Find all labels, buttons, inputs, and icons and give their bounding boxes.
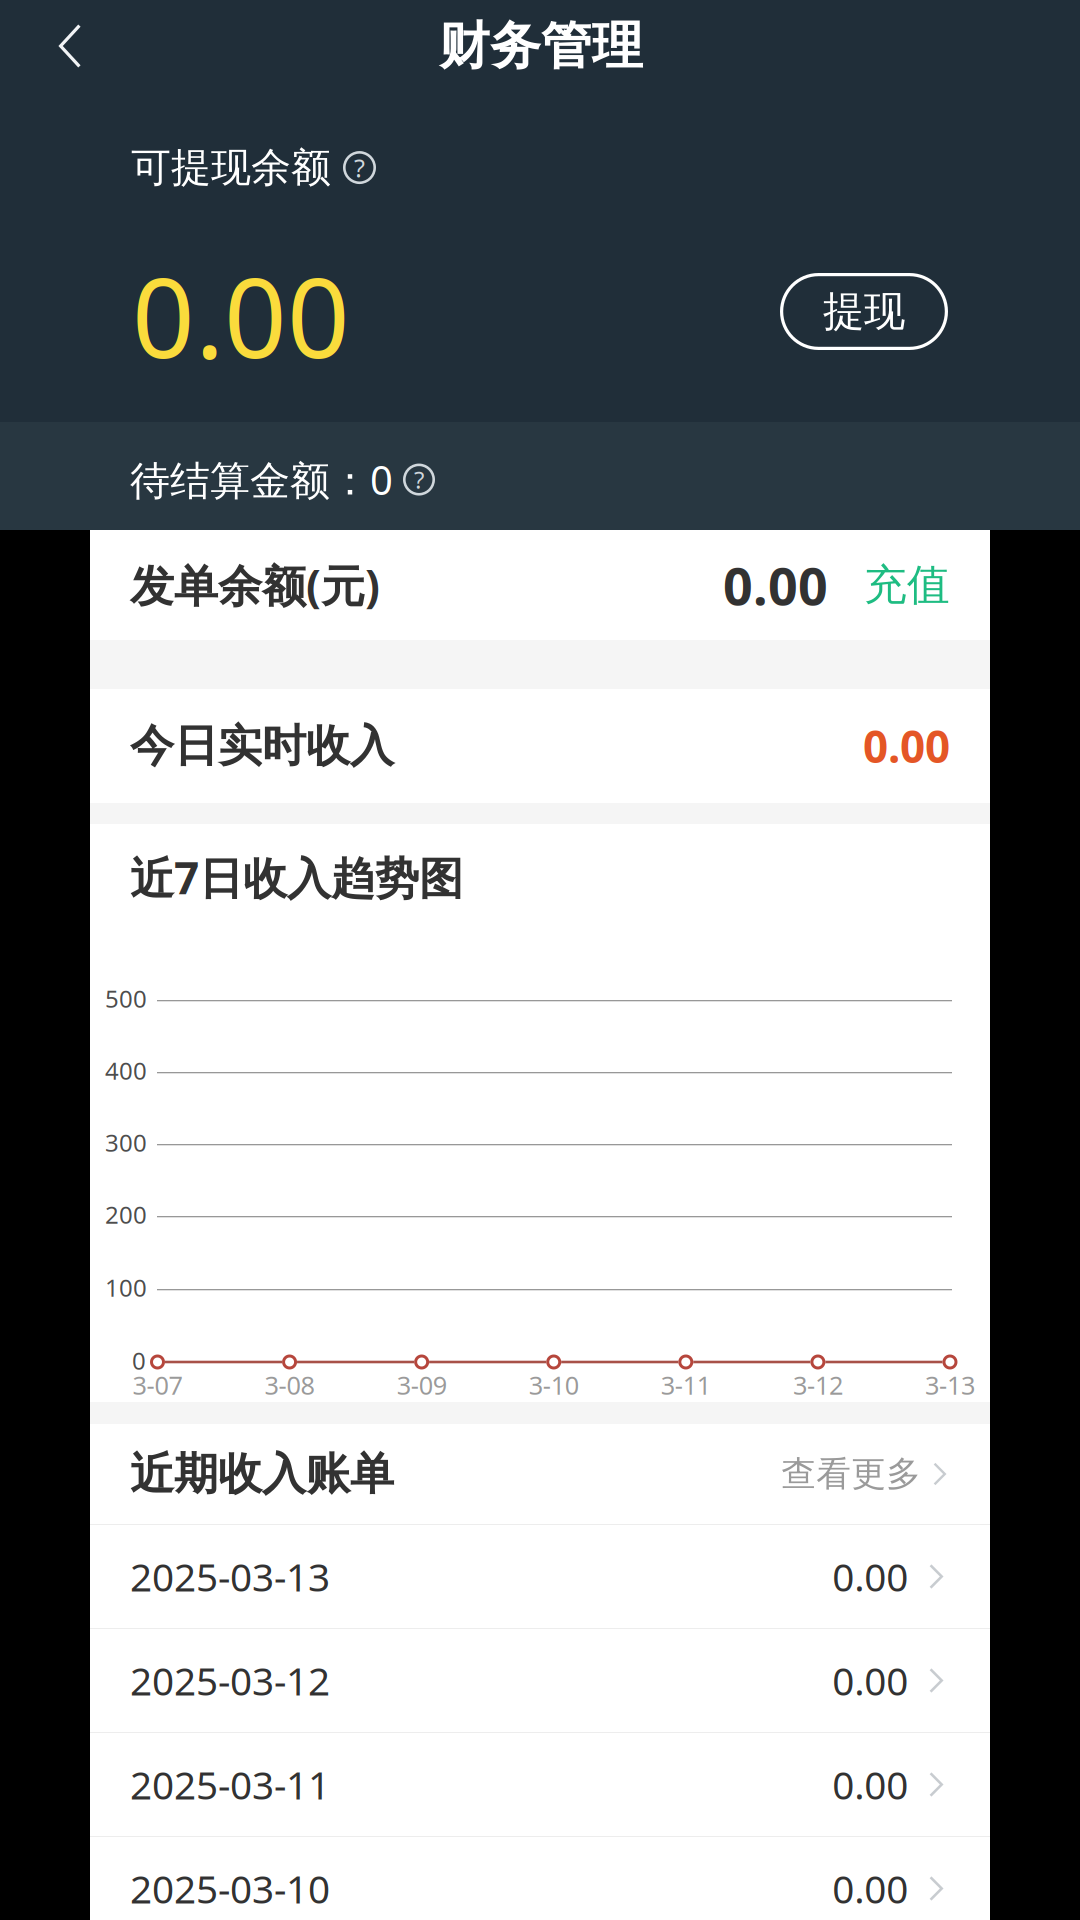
staticText: 0.00 [832,1551,908,1602]
staticText: 3-09 [397,1368,447,1402]
staticText: 500 [105,982,147,1014]
button[interactable]: 2025-03-11 [90,1733,990,1837]
staticText: 0.00 [832,1863,908,1914]
button[interactable]: 2025-03-13 [90,1525,990,1629]
staticText: 3-11 [661,1368,711,1402]
staticText: 400 [105,1054,147,1086]
staticText: 2025-03-11 [130,1759,330,1810]
staticText: 0.00 [832,1759,908,1810]
staticText: 近7日收入趋势图 [130,848,463,906]
staticText: 2025-03-13 [130,1551,330,1602]
button[interactable]: 关于待结算金额 [403,464,435,496]
staticText: 300 [105,1126,147,1158]
staticText: 3-10 [529,1368,579,1402]
staticText: 财务管理 [439,15,643,77]
staticText: 今日实时收入 [130,719,394,773]
staticText: 查看更多 [781,1453,921,1495]
button[interactable]: 2025-03-10 [90,1837,990,1920]
staticText: 提现 [823,286,905,337]
button[interactable]: 返回 [27,0,113,92]
staticText: 3-07 [132,1368,182,1402]
button[interactable]: 关于可提现余额 [343,151,376,184]
staticText: 100 [105,1271,147,1303]
staticText: 200 [105,1198,147,1230]
staticText: 3-08 [265,1368,315,1402]
staticText: 3-13 [925,1368,975,1402]
button[interactable]: 充值 [864,559,950,611]
staticText: 0.00 [863,717,950,775]
staticText: 0.00 [723,550,828,620]
staticText: 2025-03-10 [130,1863,330,1914]
staticText: ? [354,151,365,184]
button[interactable]: 查看更多 [781,1453,946,1495]
staticText: 充值 [864,559,950,611]
staticText: ? [414,464,424,495]
staticText: 发单余额(元) [130,556,380,614]
staticText: 0.00 [132,243,350,388]
staticText: 可提现余额 [131,143,331,192]
staticText: 0 [132,1344,146,1376]
staticText: 0.00 [832,1655,908,1706]
staticText: 3-12 [793,1368,843,1402]
button[interactable]: 2025-03-12 [90,1629,990,1733]
staticText: 待结算金额：0 [130,453,393,506]
staticText: 2025-03-12 [130,1655,330,1706]
staticText: 近期收入账单 [130,1447,394,1501]
button[interactable]: 提现 [780,273,948,350]
